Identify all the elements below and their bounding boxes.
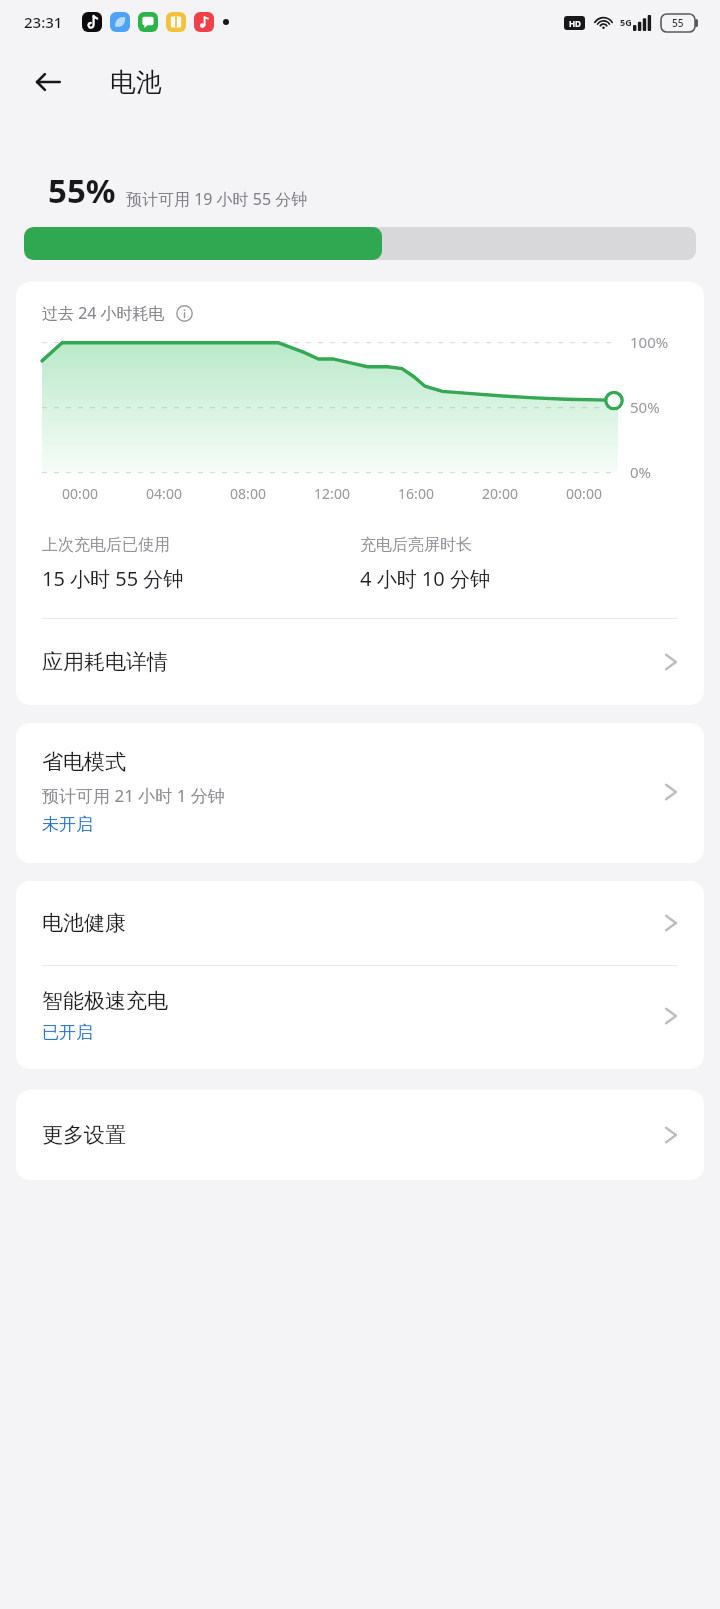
staticText: 00:00 (38, 484, 122, 503)
staticText: 应用耗电详情 (42, 649, 168, 675)
staticText: 16:00 (374, 484, 458, 503)
staticText: HD (569, 18, 581, 29)
staticText: 预计可用 19 小时 55 分钟 (126, 188, 308, 210)
staticText: 4 小时 10 分钟 (360, 565, 490, 592)
button[interactable]: Info (173, 302, 195, 324)
staticText: 08:00 (206, 484, 290, 503)
staticText: 5G (620, 16, 632, 28)
button[interactable]: 电池健康 (16, 881, 704, 965)
staticText: 100% (630, 332, 669, 352)
staticText: 20:00 (458, 484, 542, 503)
staticText: 电池 (110, 66, 162, 99)
button[interactable]: 省电模式 (16, 723, 704, 863)
staticText: 预计可用 21 小时 1 分钟 (42, 784, 225, 807)
staticText: 00:00 (542, 484, 626, 503)
staticText: 0% (630, 462, 652, 482)
staticText: 未开启 (42, 814, 93, 835)
staticText: 省电模式 (42, 749, 126, 775)
staticText: 55 (672, 16, 684, 30)
staticText: 04:00 (122, 484, 206, 503)
button[interactable]: 更多设置 (16, 1090, 704, 1180)
staticText: 过去 24 小时耗电 (42, 302, 165, 324)
staticText: 充电后亮屏时长 (360, 535, 472, 555)
staticText: 已开启 (42, 1022, 93, 1043)
staticText: 更多设置 (42, 1122, 126, 1148)
staticText: 55% (48, 168, 116, 213)
staticText: 50% (630, 397, 660, 417)
staticText: 12:00 (290, 484, 374, 503)
button[interactable]: 应用耗电详情 (16, 619, 704, 705)
staticText: 智能极速充电 (42, 988, 168, 1014)
staticText: 15 小时 55 分钟 (42, 565, 184, 592)
button[interactable]: 智能极速充电 (16, 966, 704, 1069)
staticText: 电池健康 (42, 910, 126, 936)
staticText: 上次充电后已使用 (42, 535, 170, 555)
button[interactable]: Back (26, 60, 70, 104)
staticText: 23:31 (24, 12, 63, 32)
